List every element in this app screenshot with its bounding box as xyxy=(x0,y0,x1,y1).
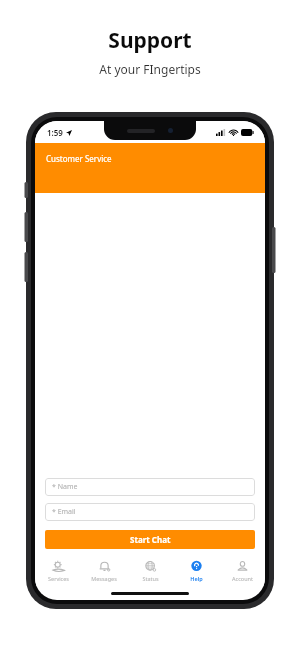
staticText: Status xyxy=(142,575,159,582)
staticText: * Email xyxy=(52,507,76,517)
staticText: * Name xyxy=(52,482,78,492)
button[interactable]: Help xyxy=(173,556,219,586)
button[interactable]: Services xyxy=(35,556,81,586)
staticText: Start Chat xyxy=(130,534,171,545)
button[interactable]: Messages xyxy=(81,556,127,586)
button[interactable]: Status xyxy=(127,556,173,586)
button[interactable]: Account xyxy=(219,556,265,586)
staticText: Services xyxy=(48,575,69,582)
staticText: At your FIngertips xyxy=(99,61,201,77)
staticText: Messages xyxy=(91,575,117,582)
button[interactable]: * Name xyxy=(45,478,255,496)
staticText: 1:59 xyxy=(47,127,63,138)
staticText: Support xyxy=(108,26,192,55)
button[interactable]: Start Chat xyxy=(45,530,255,549)
staticText: Account xyxy=(232,575,253,582)
staticText: Help xyxy=(190,575,203,582)
button[interactable]: * Email xyxy=(45,503,255,521)
staticText: Customer Service xyxy=(46,153,112,164)
